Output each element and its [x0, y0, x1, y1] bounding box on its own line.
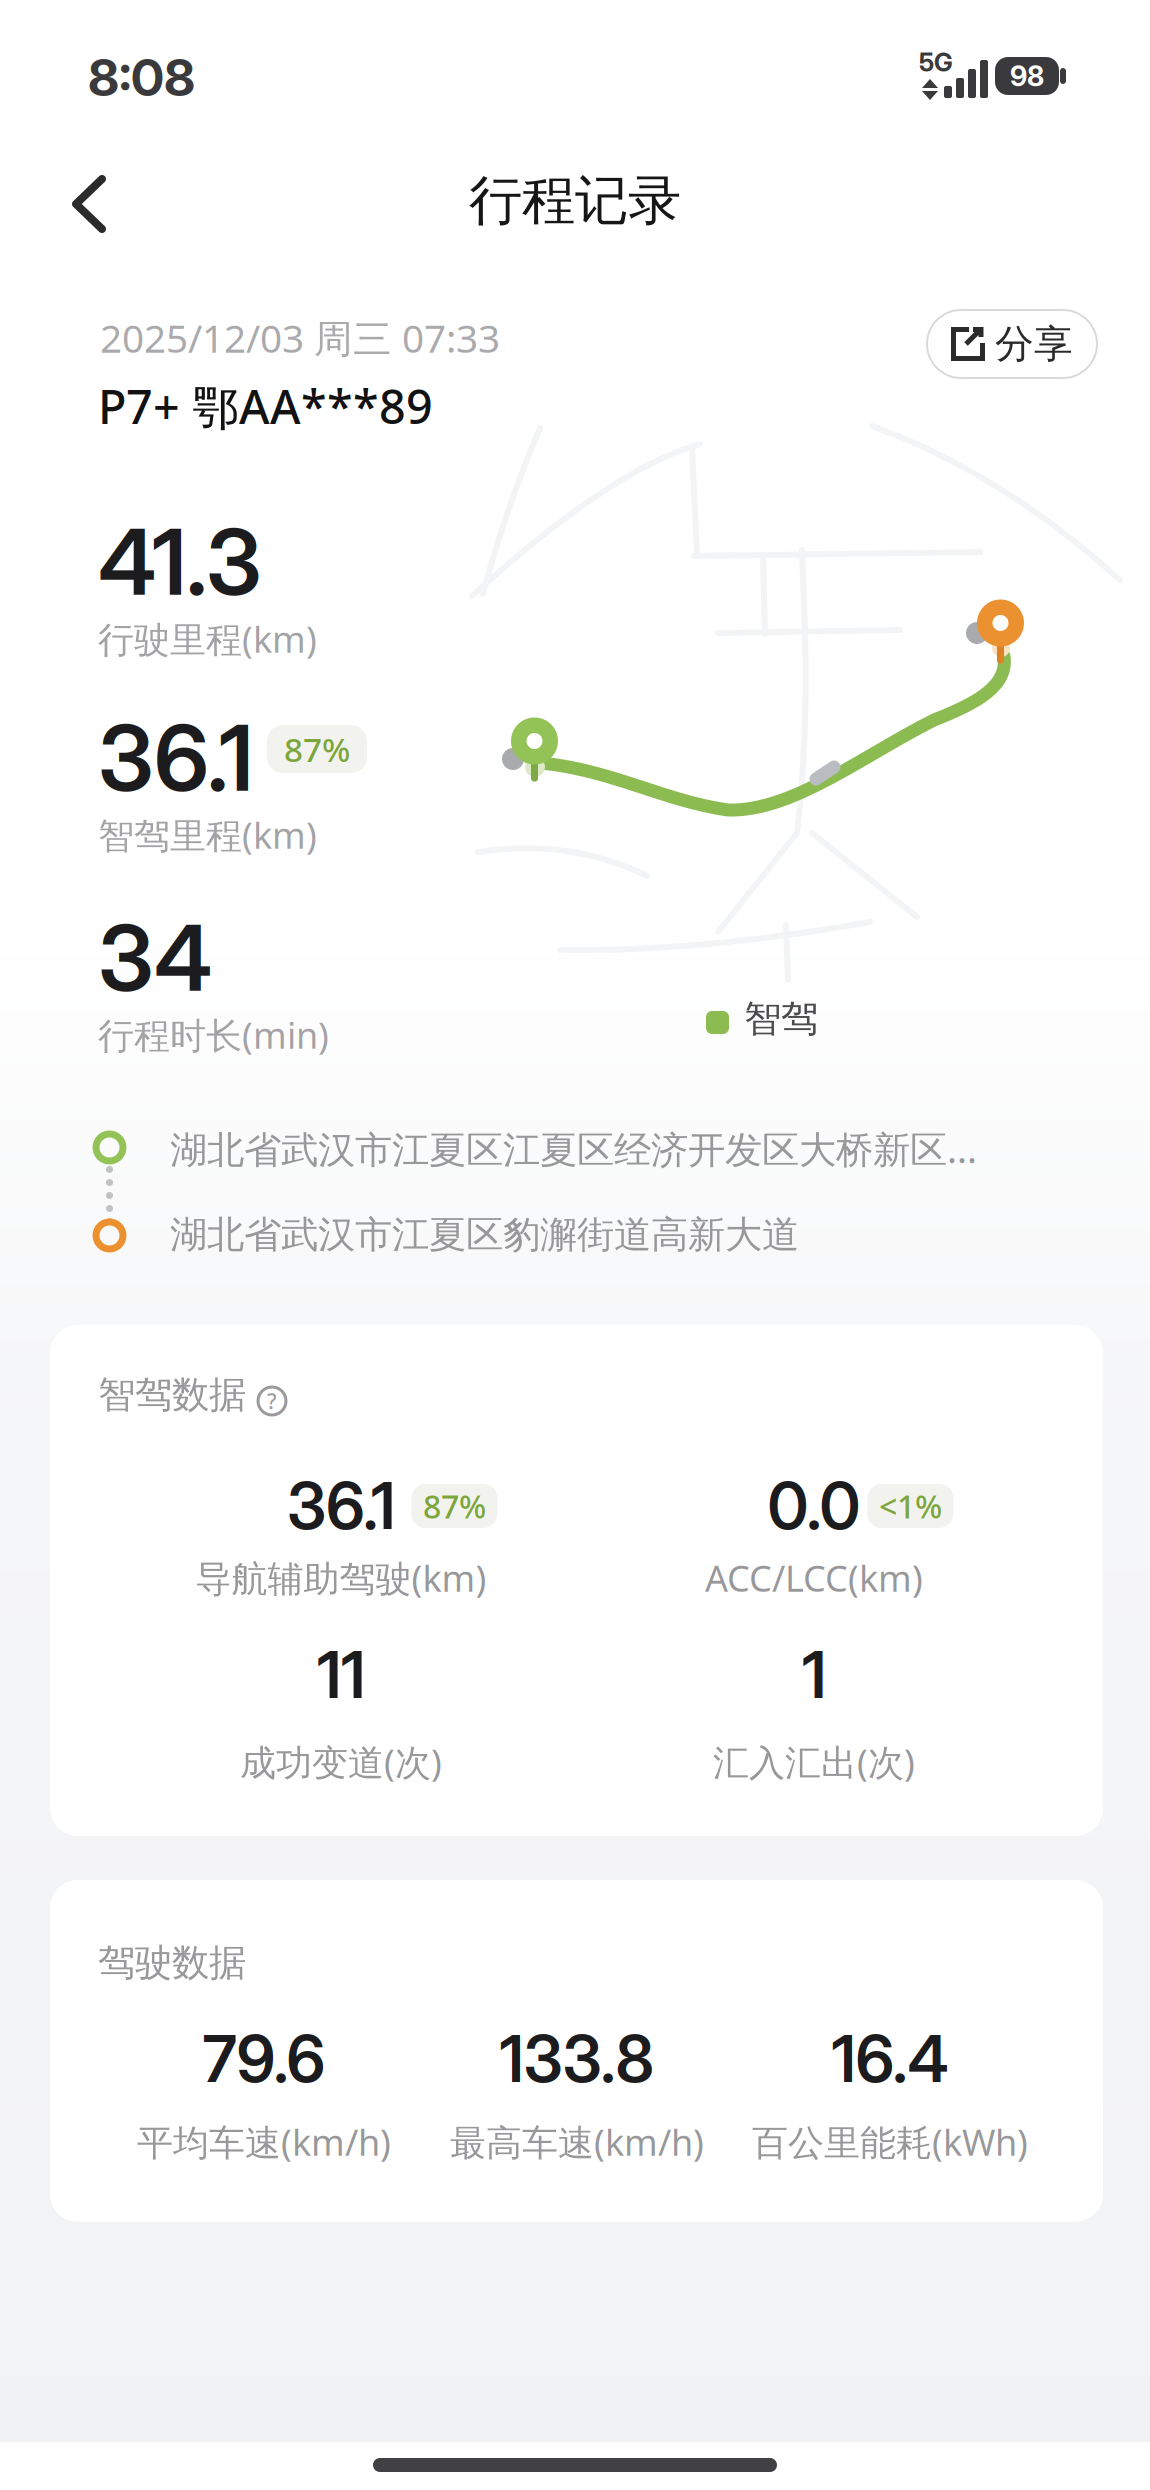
staticText: 平均车速(km/h): [137, 2118, 391, 2166]
staticText: 87%: [423, 1485, 486, 1527]
staticText: 汇入汇出(次): [713, 1738, 915, 1786]
staticText: 11: [317, 1636, 365, 1713]
staticText: 驾驶数据: [98, 1940, 246, 1986]
staticText: 36.1: [98, 703, 253, 813]
staticText: 湖北省武汉市江夏区江夏区经济开发区大桥新区...: [170, 1124, 977, 1174]
staticText: 分享: [995, 320, 1073, 368]
staticText: 行程记录: [469, 168, 681, 233]
staticText: 8:08: [88, 47, 195, 108]
button[interactable]: Back: [52, 155, 126, 253]
staticText: 2025/12/03 周三 07:33: [100, 312, 500, 363]
button[interactable]: Share: [927, 310, 1097, 378]
staticText: 导航辅助驾驶(km): [195, 1554, 486, 1602]
staticText: 成功变道(次): [240, 1738, 442, 1786]
staticText: ?: [267, 1387, 277, 1415]
staticText: 最高车速(km/h): [450, 2118, 704, 2166]
button[interactable]: About smart driving data: [258, 1387, 286, 1415]
staticText: 湖北省武汉市江夏区豹澥街道高新大道: [170, 1212, 799, 1258]
staticText: 16.4: [831, 2020, 948, 2097]
staticText: 87%: [284, 727, 350, 771]
staticText: <1%: [879, 1485, 942, 1527]
staticText: 5G: [919, 47, 953, 78]
staticText: 133.8: [499, 2020, 654, 2097]
staticText: 34: [98, 903, 212, 1013]
staticText: 智驾里程(km): [98, 811, 317, 859]
staticText: 智驾: [744, 996, 818, 1042]
staticText: 36.1: [287, 1467, 395, 1544]
staticText: P7+ 鄂AA***89: [98, 375, 433, 437]
staticText: 0.0: [767, 1467, 860, 1544]
staticText: 41.3: [98, 507, 262, 617]
staticText: 行驶里程(km): [98, 615, 317, 663]
staticText: 1: [802, 1636, 826, 1713]
staticText: 智驾数据: [98, 1372, 246, 1418]
staticText: 79.6: [202, 2020, 325, 2097]
staticText: 行程时长(min): [98, 1011, 329, 1059]
staticText: ACC/LCC(km): [705, 1554, 923, 1602]
staticText: 98: [1010, 59, 1044, 93]
staticText: 百公里能耗(kWh): [752, 2118, 1028, 2166]
